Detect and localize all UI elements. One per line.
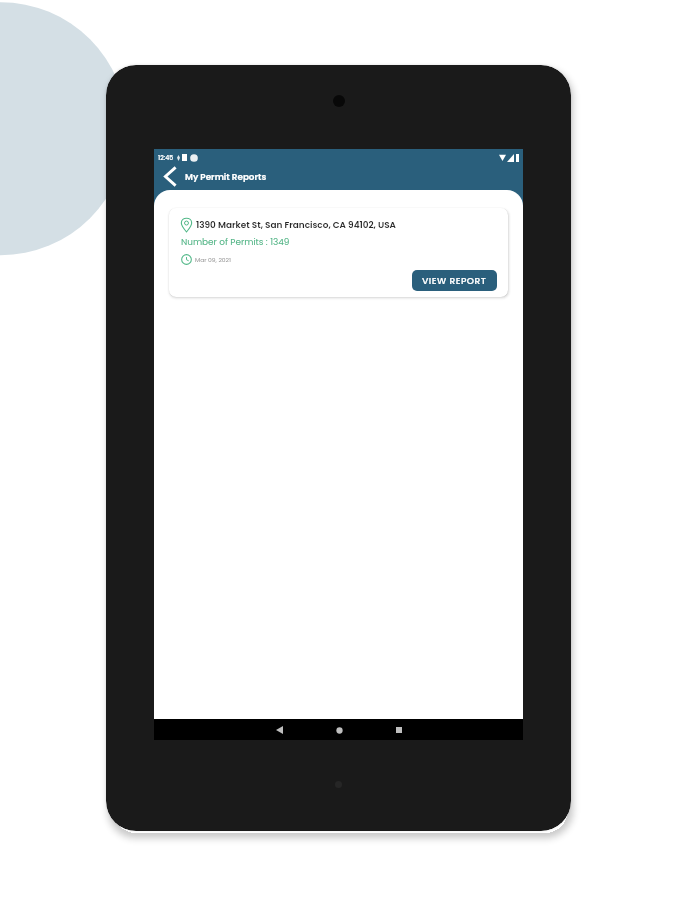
staticText: 1390 Market St, San Francisco, CA 94102,…	[196, 219, 396, 231]
button[interactable]: Recents	[384, 720, 414, 740]
button[interactable]: VIEW REPORT	[412, 270, 497, 291]
staticText: Number of Permits : 1349	[181, 236, 290, 248]
button[interactable]: 1390 Market St, San Francisco, CA 94102,…	[169, 208, 508, 297]
button[interactable]: Home	[324, 720, 354, 740]
staticText: My Permit Reports	[185, 171, 267, 183]
staticText: 12:45	[158, 153, 174, 162]
staticText: Mar 09, 2021	[195, 256, 231, 264]
button[interactable]: Back	[162, 166, 179, 187]
button[interactable]: Back	[264, 720, 294, 740]
staticText: VIEW REPORT	[422, 274, 487, 287]
